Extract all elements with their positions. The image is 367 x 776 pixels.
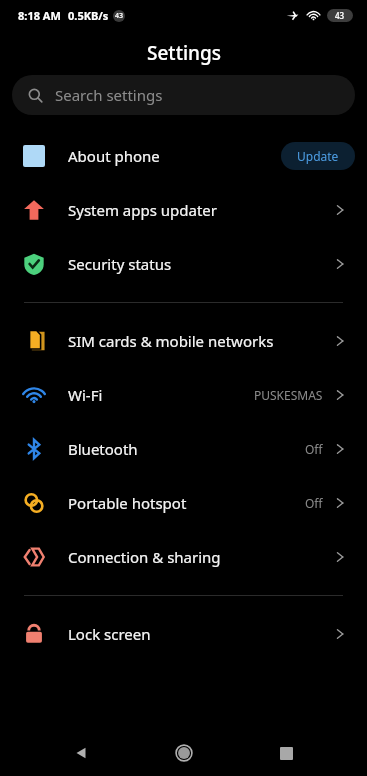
staticText: Connection & sharing bbox=[68, 547, 333, 567]
staticText: Wi-Fi bbox=[68, 385, 254, 405]
staticText: Security status bbox=[68, 254, 333, 274]
button[interactable]: SIM cards & mobile networks bbox=[0, 314, 367, 368]
button[interactable]: Portable hotspot bbox=[0, 476, 367, 530]
button[interactable]: Back bbox=[59, 731, 103, 775]
staticText: Search settings bbox=[55, 85, 163, 105]
staticText: 43 bbox=[115, 11, 124, 21]
staticText: PUSKESMAS bbox=[254, 387, 323, 403]
staticText: System apps updater bbox=[68, 200, 333, 220]
button[interactable]: Security status bbox=[0, 237, 367, 291]
button[interactable]: Search settings bbox=[12, 75, 355, 115]
staticText: Bluetooth bbox=[68, 439, 305, 459]
button[interactable]: About phone bbox=[0, 129, 367, 183]
button[interactable]: Connection & sharing bbox=[0, 530, 367, 584]
button[interactable]: System apps updater bbox=[0, 183, 367, 237]
staticText: Off bbox=[305, 495, 323, 511]
staticText: 43 bbox=[335, 10, 345, 21]
staticText: Portable hotspot bbox=[68, 493, 305, 513]
button[interactable]: Wi-Fi bbox=[0, 368, 367, 422]
button[interactable]: Bluetooth bbox=[0, 422, 367, 476]
button[interactable]: Recents bbox=[264, 731, 308, 775]
staticText: SIM cards & mobile networks bbox=[68, 331, 333, 351]
button[interactable]: Lock screen bbox=[0, 607, 367, 661]
staticText: 8:18 AM bbox=[18, 8, 61, 23]
staticText: Off bbox=[305, 441, 323, 457]
staticText: Lock screen bbox=[68, 624, 333, 644]
button[interactable]: Home bbox=[162, 731, 206, 775]
staticText: 0.5KB/s bbox=[68, 8, 109, 23]
staticText: Update bbox=[297, 148, 339, 164]
staticText: Settings bbox=[147, 40, 221, 66]
staticText: About phone bbox=[68, 146, 281, 166]
button[interactable]: Update bbox=[281, 142, 355, 170]
